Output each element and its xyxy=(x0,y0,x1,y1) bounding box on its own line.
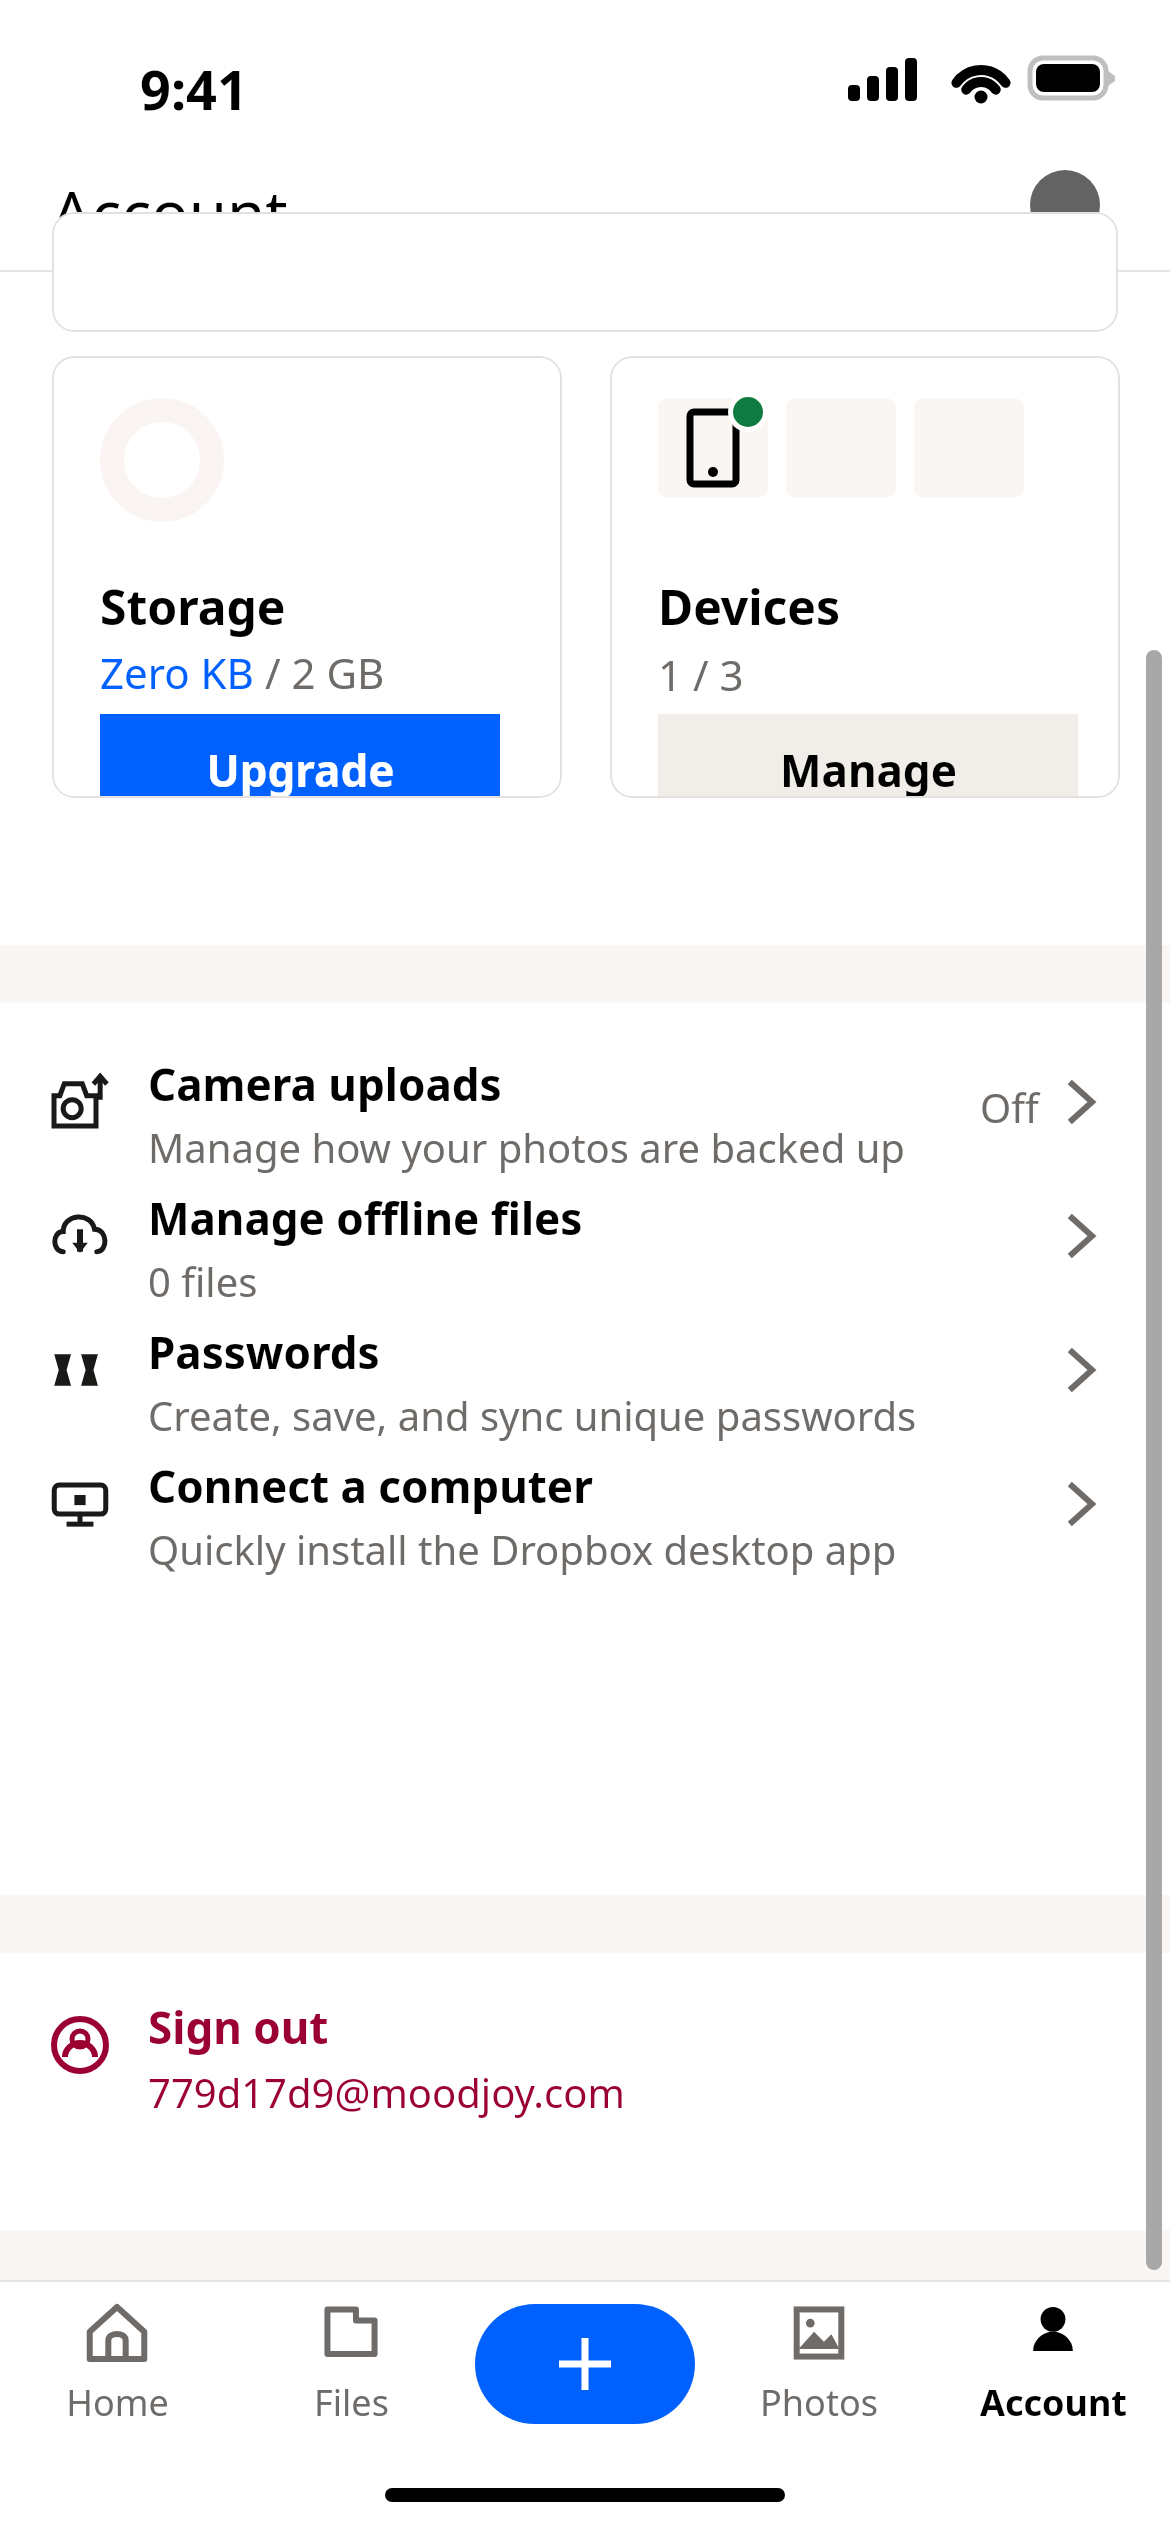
staticText: Storage xyxy=(100,574,286,639)
button[interactable] xyxy=(52,212,1118,332)
staticText: Files xyxy=(314,2378,389,2427)
staticText: 1 / 3 xyxy=(658,646,744,703)
staticText: Camera uploads xyxy=(148,1054,502,1114)
staticText: Off xyxy=(980,1080,1039,1134)
button[interactable]: Storage xyxy=(52,356,562,798)
staticText: Upgrade xyxy=(206,740,395,798)
staticText: 0 files xyxy=(148,1254,258,1308)
button[interactable]: Manage offline files xyxy=(0,1166,1170,1300)
staticText: Manage offline files xyxy=(148,1188,583,1248)
staticText: Connect a computer xyxy=(148,1456,593,1516)
button[interactable]: Camera uploads xyxy=(0,1032,1170,1166)
staticText: Quickly install the Dropbox desktop app xyxy=(148,1522,897,1576)
button[interactable]: Devices xyxy=(610,356,1120,798)
button[interactable]: Home xyxy=(0,2302,234,2442)
button[interactable]: Manage xyxy=(658,714,1078,798)
button[interactable]: Files xyxy=(234,2302,468,2442)
staticText: Sign out xyxy=(148,1997,329,2057)
staticText: Manage xyxy=(780,740,957,798)
button[interactable]: Connect a computer xyxy=(0,1434,1170,1568)
button[interactable]: Photos xyxy=(702,2302,936,2442)
button[interactable]: Sign out xyxy=(0,1977,1170,2117)
staticText: Home xyxy=(66,2378,169,2427)
staticText: Account xyxy=(52,170,288,254)
staticText: Manage how your photos are backed up xyxy=(148,1120,905,1174)
staticText: Account xyxy=(980,2378,1127,2427)
button[interactable]: Passwords xyxy=(0,1300,1170,1434)
staticText: Photos xyxy=(760,2378,878,2427)
button[interactable]: Account settings xyxy=(1010,158,1120,268)
staticText: Zero KB xyxy=(100,644,254,701)
staticText: / 2 GB xyxy=(254,644,385,701)
staticText: Create, save, and sync unique passwords xyxy=(148,1388,917,1442)
button[interactable]: Upgrade xyxy=(100,714,500,798)
button[interactable]: Create xyxy=(475,2304,695,2424)
staticText: Devices xyxy=(658,574,841,639)
button[interactable]: Account xyxy=(936,2302,1170,2442)
staticText: 9:41 xyxy=(140,52,248,126)
staticText: 779d17d9@moodjoy.com xyxy=(148,2065,625,2119)
staticText: Passwords xyxy=(148,1322,380,1382)
